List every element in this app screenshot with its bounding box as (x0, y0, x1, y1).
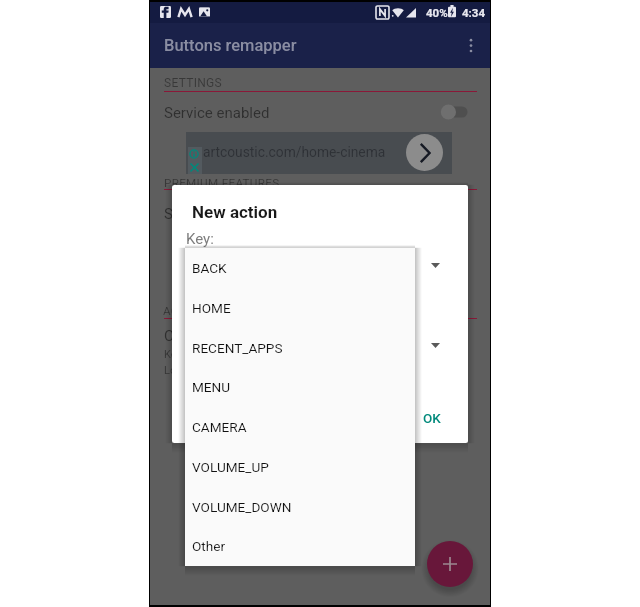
staticText: OK (423, 410, 441, 426)
staticText: BACK (192, 260, 227, 276)
staticText: MENU (192, 379, 231, 395)
button[interactable]: More options (459, 34, 482, 57)
button[interactable]: Sound control (150, 201, 490, 227)
staticText: HOME (192, 300, 231, 316)
button[interactable]: Open advertisement (406, 134, 443, 171)
button[interactable]: Camera button (150, 324, 490, 380)
button[interactable]: BACK (185, 248, 415, 288)
button[interactable]: CAMERA (185, 407, 415, 447)
staticText: RECENT_APPS (192, 340, 283, 356)
staticText: Sound control (164, 205, 257, 223)
staticText: Other (192, 538, 226, 554)
button[interactable]: VOLUME_UP (185, 447, 415, 487)
button[interactable]: artcoustic.com/home-cinema (186, 132, 452, 174)
staticText: CAMERA (192, 419, 247, 435)
staticText: artcoustic.com/home-cinema (203, 144, 386, 160)
button[interactable]: VOLUME_DOWN (185, 487, 415, 527)
staticText: ACTIONS (163, 304, 214, 318)
staticText: Buttons remapper (164, 36, 297, 55)
staticText: Long press: off (164, 364, 238, 377)
button[interactable]: Service enabled (150, 100, 490, 125)
staticText: Key: CAMERA (164, 348, 232, 361)
staticText: New action (192, 202, 278, 222)
button[interactable]: Add action (427, 541, 473, 587)
staticText: 40% (426, 6, 448, 19)
staticText: SETTINGS (164, 76, 222, 90)
staticText: VOLUME_UP (192, 459, 269, 475)
button[interactable]: Other (185, 526, 415, 566)
staticText: Service enabled (164, 104, 270, 122)
staticText: VOLUME_DOWN (192, 499, 292, 515)
button[interactable]: OK (410, 405, 454, 431)
button[interactable]: MENU (185, 367, 415, 407)
staticText: 4:34 (462, 6, 486, 19)
button[interactable]: HOME (185, 288, 415, 328)
staticText: PREMIUM FEATURES (164, 176, 280, 190)
button[interactable]: RECENT_APPS (185, 328, 415, 368)
staticText: Key: (186, 230, 214, 248)
staticText: Camera button (164, 327, 263, 345)
